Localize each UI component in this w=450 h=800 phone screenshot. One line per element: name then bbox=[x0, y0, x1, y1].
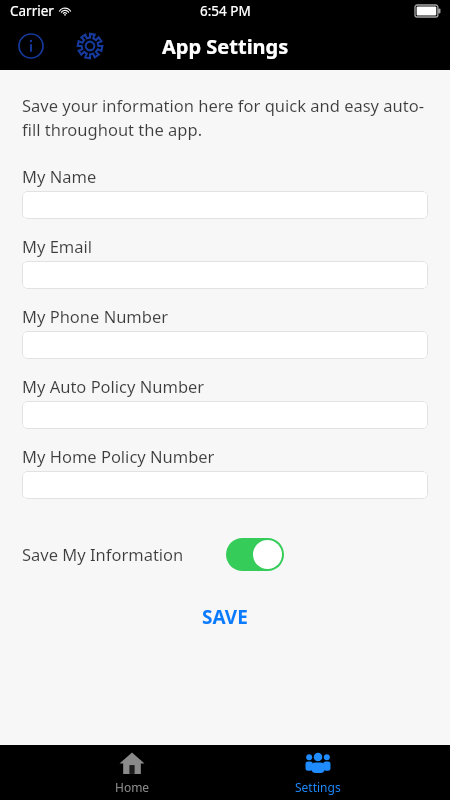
staticText: Save My Information bbox=[22, 543, 184, 565]
button[interactable]: Info bbox=[14, 29, 48, 63]
button[interactable] bbox=[22, 331, 428, 359]
staticText: Home bbox=[115, 779, 150, 795]
staticText: Carrier bbox=[10, 2, 54, 20]
staticText: App Settings bbox=[162, 33, 289, 60]
button[interactable] bbox=[22, 191, 428, 219]
button[interactable] bbox=[22, 261, 428, 289]
staticText: My Home Policy Number bbox=[22, 445, 215, 467]
staticText: My Auto Policy Number bbox=[22, 375, 205, 397]
staticText: My Name bbox=[22, 165, 97, 187]
staticText: Save your information here for quick and… bbox=[22, 94, 428, 141]
button[interactable]: Home bbox=[77, 745, 187, 800]
staticText: SAVE bbox=[202, 604, 248, 630]
button[interactable] bbox=[22, 471, 428, 499]
staticText: My Phone Number bbox=[22, 305, 169, 327]
button[interactable]: Settings bbox=[263, 745, 373, 800]
button[interactable]: Settings bbox=[72, 28, 108, 64]
button[interactable] bbox=[22, 401, 428, 429]
button[interactable]: Save My Information toggle bbox=[226, 538, 284, 571]
button[interactable]: SAVE bbox=[180, 598, 270, 636]
staticText: Settings bbox=[295, 779, 341, 795]
staticText: 6:54 PM bbox=[200, 2, 251, 20]
staticText: My Email bbox=[22, 235, 93, 257]
